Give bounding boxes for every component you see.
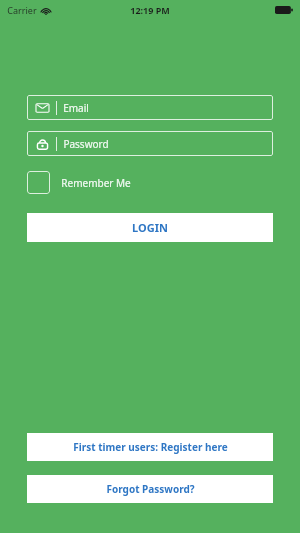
staticText: LOGIN bbox=[132, 220, 168, 235]
button[interactable]: Forgot Password? bbox=[27, 475, 273, 503]
button[interactable]: Email bbox=[27, 95, 273, 120]
staticText: Forgot Password? bbox=[106, 482, 195, 496]
staticText: First timer users: Register here bbox=[73, 440, 228, 454]
staticText: Carrier bbox=[7, 4, 37, 16]
staticText: 12:19 PM bbox=[130, 4, 170, 16]
button[interactable]: LOGIN bbox=[27, 213, 273, 242]
button[interactable]: Remember Me bbox=[27, 171, 131, 194]
button[interactable]: First timer users: Register here bbox=[27, 433, 273, 461]
staticText: Email bbox=[63, 101, 89, 115]
staticText: Password bbox=[63, 137, 109, 151]
staticText: Remember Me bbox=[61, 176, 131, 190]
button[interactable]: Password bbox=[27, 131, 273, 156]
